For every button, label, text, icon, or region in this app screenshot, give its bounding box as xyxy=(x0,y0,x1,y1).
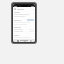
button[interactable]: Menu xyxy=(14,8,16,10)
button[interactable]: Tab 3 xyxy=(28,39,33,42)
button[interactable]: Tab 1 xyxy=(15,39,20,42)
button[interactable]: Menu xyxy=(13,7,35,11)
button[interactable]: Tab 2 xyxy=(22,39,27,42)
button[interactable] xyxy=(14,19,34,21)
button[interactable] xyxy=(14,31,34,32)
button[interactable] xyxy=(14,29,34,30)
